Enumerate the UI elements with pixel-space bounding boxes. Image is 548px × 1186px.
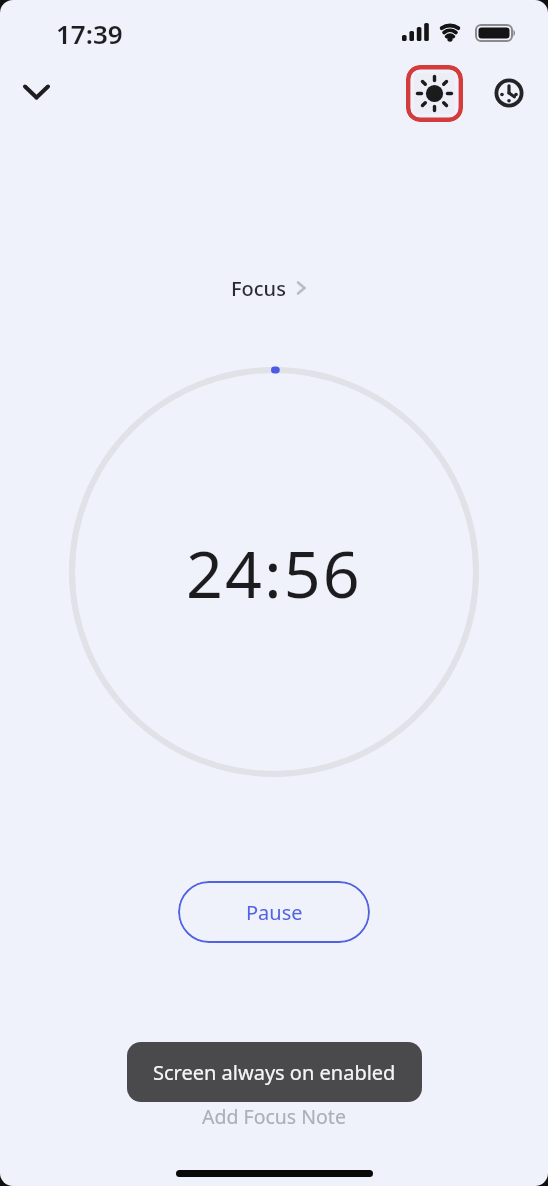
staticText: 17:39 — [56, 16, 123, 51]
button[interactable] — [406, 65, 463, 122]
button[interactable]: Add Focus Note — [190, 1101, 358, 1132]
staticText: Screen always on enabled — [153, 1059, 396, 1086]
button[interactable]: Focus — [0, 272, 543, 304]
staticText: Add Focus Note — [202, 1103, 346, 1130]
button[interactable]: Pause — [178, 881, 370, 943]
staticText: Focus — [231, 275, 286, 302]
button[interactable] — [487, 71, 531, 115]
button[interactable] — [15, 70, 59, 114]
staticText: 24:56 — [186, 529, 362, 617]
staticText: Pause — [246, 899, 303, 926]
